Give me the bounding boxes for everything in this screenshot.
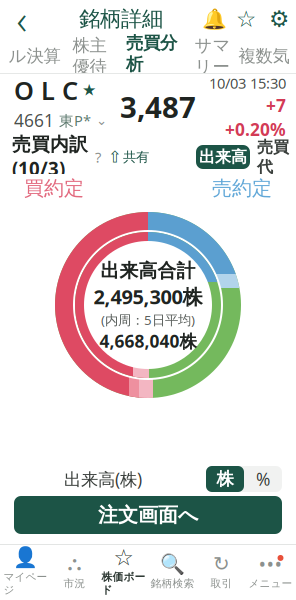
staticText: 買約定 <box>24 176 84 201</box>
button[interactable]: 複数気 <box>236 39 291 73</box>
staticText: 東P* <box>59 111 91 130</box>
staticText: ↻ <box>213 553 230 575</box>
staticText: ⛬ <box>67 554 81 574</box>
staticText: ル決算 <box>8 45 60 67</box>
button[interactable]: 売買代 <box>250 145 296 169</box>
staticText: ☆ <box>236 6 256 32</box>
button[interactable]: 株 <box>206 466 244 492</box>
staticText: ⌄ <box>96 113 107 128</box>
button[interactable]: ☆ <box>99 545 148 599</box>
staticText: 共有 <box>123 149 149 165</box>
staticText: ★ <box>82 81 96 99</box>
staticText: 2,495,300株 <box>93 283 202 310</box>
staticText: ••• <box>258 551 282 577</box>
button[interactable]: 株主優待 <box>64 39 114 73</box>
staticText: ⚙ <box>269 6 289 32</box>
button[interactable]: ⛬ <box>50 545 99 599</box>
staticText: 売買代 <box>257 137 289 177</box>
button[interactable]: 出来高 <box>196 145 250 169</box>
staticText: 注文画面へ <box>98 503 198 527</box>
staticText: 株 <box>216 468 233 490</box>
staticText: マイページ <box>3 570 47 597</box>
button[interactable]: Add to favourites <box>230 0 262 38</box>
staticText: ☆ <box>113 544 133 570</box>
staticText: 10/03 15:30 <box>209 73 286 93</box>
staticText: 出来高合計 <box>100 259 195 282</box>
button[interactable]: Help <box>88 144 108 170</box>
button[interactable]: % <box>244 466 282 492</box>
button[interactable]: ル決算 <box>4 39 64 73</box>
staticText: 銘柄検索 <box>150 577 194 590</box>
staticText: % <box>256 467 270 490</box>
staticText: 4661 <box>14 109 54 132</box>
staticText: 👤 <box>13 546 38 569</box>
button[interactable]: Back <box>0 0 44 38</box>
button[interactable]: Settings <box>262 0 296 38</box>
staticText: ⇧ <box>108 148 121 166</box>
staticText: 取引 <box>210 577 232 590</box>
button[interactable]: 👤 <box>1 545 50 599</box>
staticText: 売約定 <box>212 176 272 201</box>
button[interactable]: 🔍 <box>148 545 197 599</box>
staticText: 株価ボード <box>101 570 145 597</box>
button[interactable]: ••• <box>246 545 295 599</box>
staticText: 売買内訳(10/3) <box>12 133 88 181</box>
staticText: 出来高 <box>199 147 247 167</box>
staticText: O L C <box>14 73 78 107</box>
button[interactable]: ⇧ <box>108 144 149 170</box>
button[interactable]: 売買分析 <box>114 39 188 73</box>
staticText: 4,668,040株 <box>99 330 196 353</box>
staticText: +0.20% <box>225 118 286 141</box>
staticText: 銘柄詳細 <box>79 6 163 32</box>
staticText: メニュー <box>248 577 292 590</box>
button[interactable]: サマリー <box>188 39 236 73</box>
button[interactable]: ↻ <box>197 545 246 599</box>
staticText: 株主優待 <box>72 35 106 77</box>
staticText: 複数気 <box>238 45 289 67</box>
button[interactable]: 注文画面へ <box>14 496 282 534</box>
staticText: ‹ <box>16 0 27 45</box>
staticText: 🔍 <box>160 552 185 575</box>
button[interactable]: Add alert <box>198 0 230 38</box>
staticText: 3,487 <box>120 87 196 126</box>
staticText: 市況 <box>63 577 85 590</box>
staticText: サマリー <box>194 35 230 77</box>
staticText: +7 <box>266 94 286 117</box>
staticText: 売買分析 <box>126 32 177 75</box>
staticText: 出来高(株) <box>64 467 142 490</box>
staticText: ? <box>95 147 101 167</box>
staticText: (内周：5日平均) <box>101 311 195 329</box>
staticText: 🔔 <box>201 8 226 30</box>
